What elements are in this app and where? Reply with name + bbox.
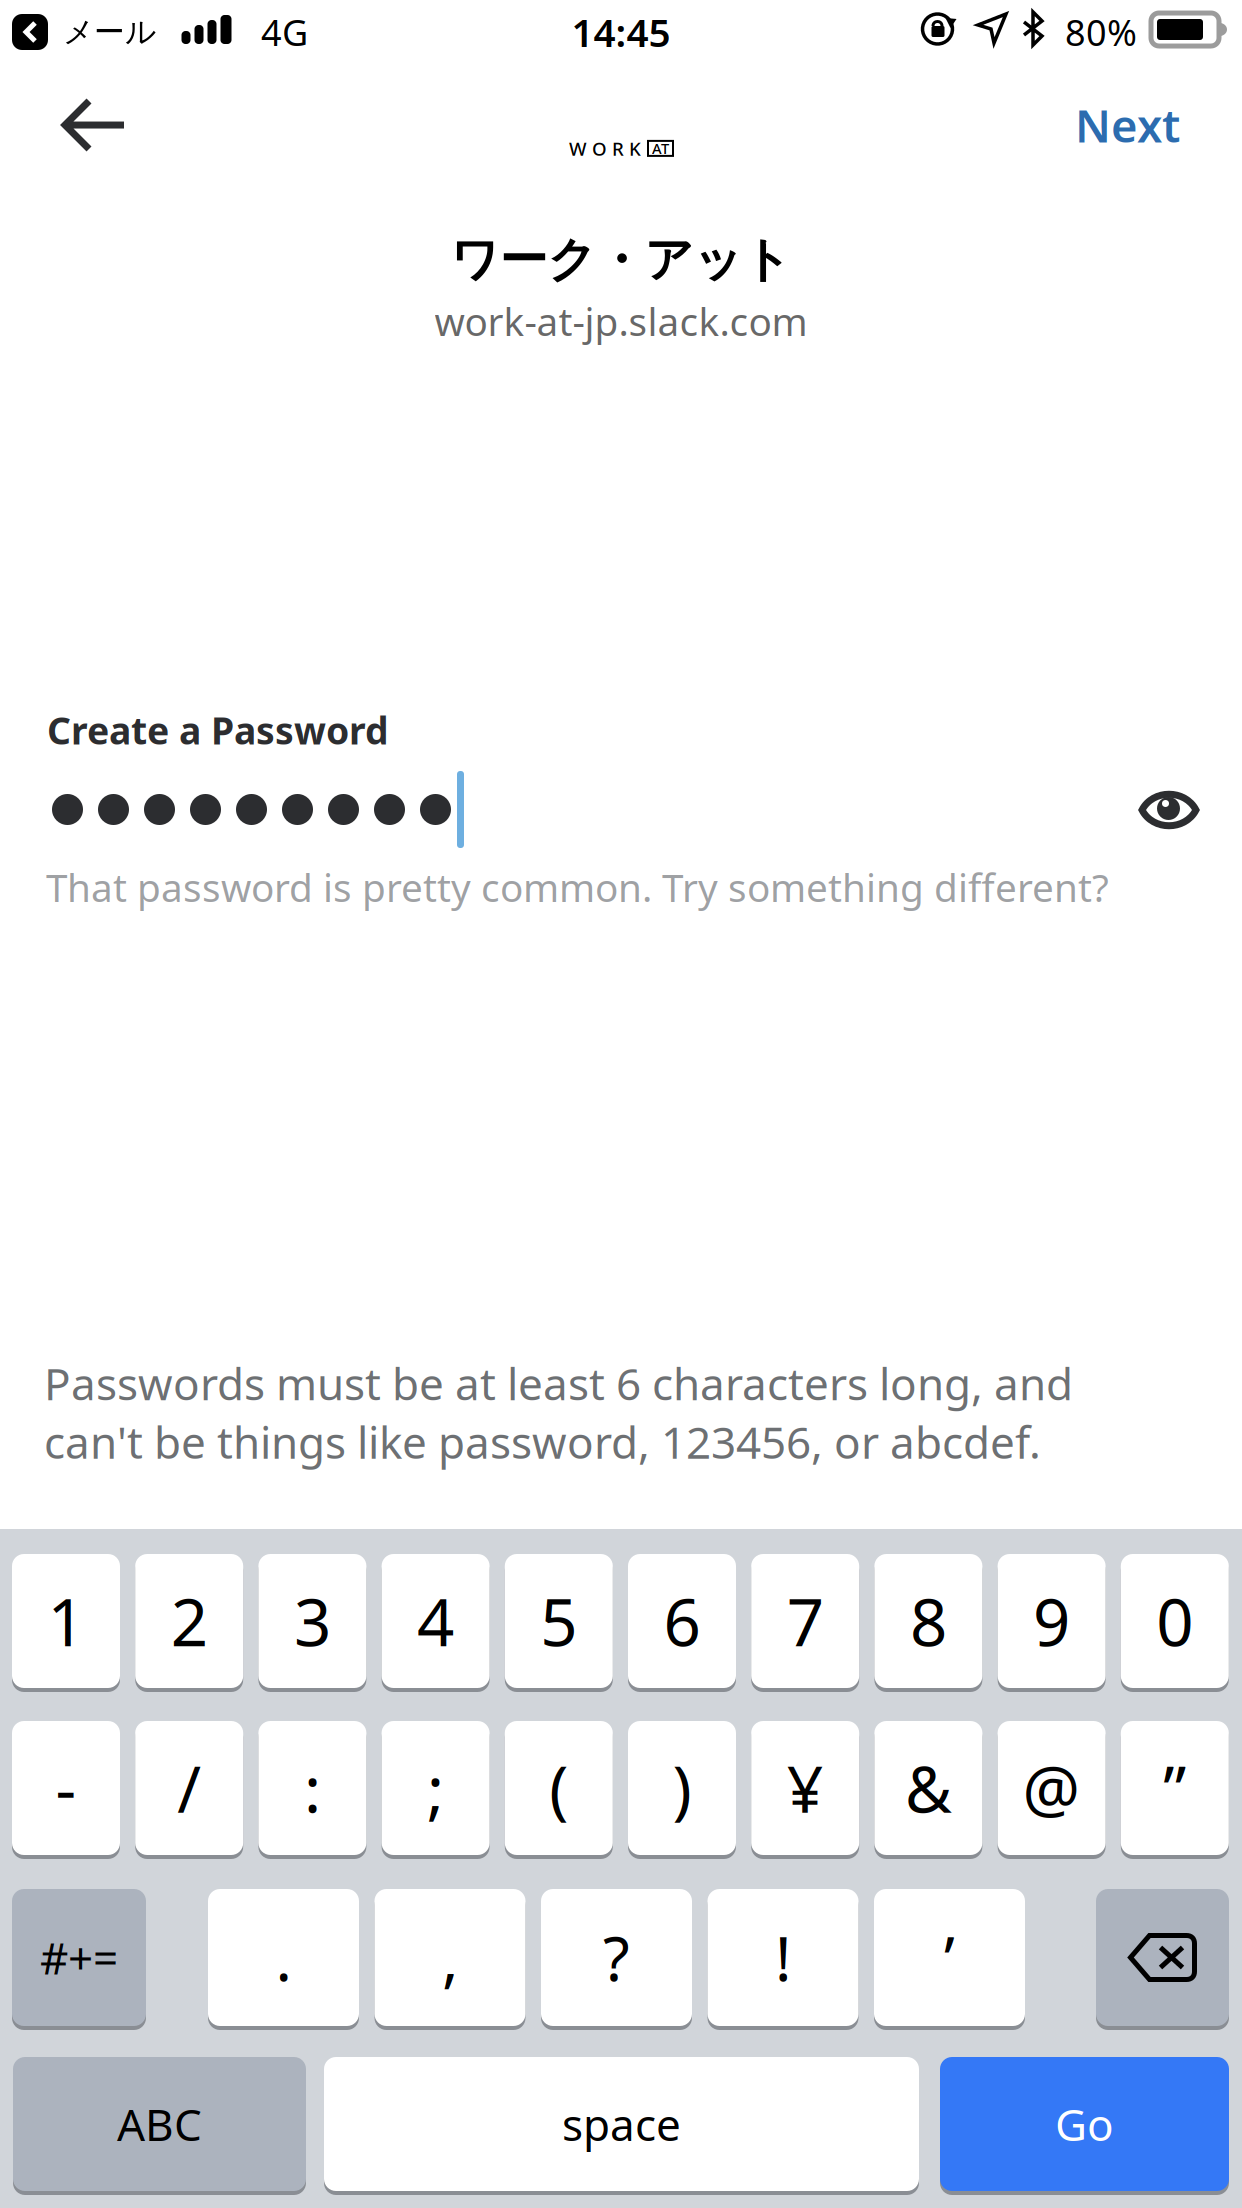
button[interactable]: Next — [1010, 95, 1242, 155]
staticText: ¥ — [787, 1745, 824, 1830]
button[interactable]: : — [258, 1721, 366, 1859]
staticText: メール — [63, 13, 156, 51]
staticText: , — [442, 1917, 458, 1998]
button[interactable]: 5 — [505, 1554, 613, 1692]
button[interactable]: Delete — [1096, 1889, 1229, 2030]
button[interactable]: ( — [505, 1721, 613, 1859]
staticText: ” — [1163, 1745, 1186, 1830]
staticText: 80% — [1065, 8, 1137, 56]
button[interactable]: 8 — [874, 1554, 982, 1692]
staticText: 5 — [540, 1578, 577, 1664]
staticText: AT — [652, 139, 669, 158]
staticText: Next — [1075, 95, 1180, 155]
button[interactable]: 4 — [382, 1554, 490, 1692]
staticText: ; — [427, 1745, 444, 1830]
staticText: 2 — [171, 1578, 208, 1664]
staticText: #+= — [40, 1928, 118, 1987]
button[interactable]: #+= — [12, 1889, 146, 2030]
staticText: Passwords must be at least 6 characters … — [44, 1354, 1073, 1412]
staticText: 4G — [261, 8, 308, 56]
button[interactable]: 9 — [998, 1554, 1106, 1692]
staticText: ’ — [944, 1917, 955, 1998]
button[interactable]: @ — [998, 1721, 1106, 1859]
staticText: work-at-jp.slack.com — [434, 295, 807, 347]
button[interactable]: Go — [940, 2057, 1229, 2195]
staticText: ワーク・アット — [450, 230, 791, 289]
staticText: W O R K — [569, 136, 641, 161]
button[interactable]: Back — [61, 98, 128, 152]
button[interactable]: & — [874, 1721, 982, 1859]
staticText: 14:45 — [571, 6, 670, 58]
staticText: Go — [1055, 2095, 1114, 2153]
button[interactable]: . — [208, 1889, 359, 2030]
staticText: That password is pretty common. Try some… — [46, 861, 1109, 913]
staticText: 7 — [787, 1578, 824, 1664]
staticText: 8 — [910, 1578, 947, 1664]
staticText: ? — [603, 1917, 630, 1998]
staticText: ABC — [117, 2095, 202, 2153]
staticText: : — [304, 1745, 321, 1830]
button[interactable]: 7 — [751, 1554, 859, 1692]
staticText: 1 — [47, 1578, 84, 1664]
button[interactable]: 1 — [12, 1554, 120, 1692]
staticText: ( — [549, 1745, 568, 1830]
button[interactable]: ! — [707, 1889, 858, 2030]
staticText: / — [177, 1745, 201, 1830]
staticText: Create a Password — [47, 705, 389, 755]
staticText: space — [562, 2095, 681, 2153]
button[interactable]: ; — [382, 1721, 490, 1859]
button[interactable]: 2 — [135, 1554, 243, 1692]
staticText: 3 — [294, 1578, 331, 1664]
button[interactable]: ¥ — [751, 1721, 859, 1859]
staticText: . — [275, 1917, 291, 1998]
button[interactable]: 6 — [628, 1554, 736, 1692]
staticText: 6 — [663, 1578, 700, 1664]
button[interactable]: Password — [47, 771, 1107, 848]
button[interactable]: ’ — [874, 1889, 1025, 2030]
staticText: ) — [672, 1745, 691, 1830]
button[interactable]: space — [324, 2057, 919, 2195]
button[interactable]: Show password — [1139, 793, 1199, 827]
button[interactable]: 3 — [258, 1554, 366, 1692]
button[interactable]: ABC — [13, 2057, 306, 2195]
staticText: - — [55, 1745, 76, 1830]
button[interactable]: - — [12, 1721, 120, 1859]
staticText: & — [905, 1745, 952, 1830]
button[interactable]: 0 — [1121, 1554, 1229, 1692]
button[interactable]: / — [135, 1721, 243, 1859]
button[interactable]: ? — [541, 1889, 692, 2030]
staticText: 4 — [417, 1578, 454, 1664]
staticText: can't be things like password, 123456, o… — [44, 1412, 1041, 1471]
staticText: 9 — [1033, 1578, 1070, 1664]
staticText: 0 — [1156, 1578, 1193, 1664]
button[interactable]: ) — [628, 1721, 736, 1859]
staticText: ! — [775, 1917, 791, 1998]
staticText: @ — [1023, 1745, 1081, 1830]
button[interactable]: ” — [1121, 1721, 1229, 1859]
button[interactable]: , — [374, 1889, 525, 2030]
